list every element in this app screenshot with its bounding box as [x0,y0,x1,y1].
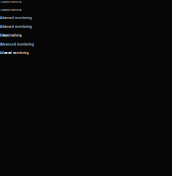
staticText: Advanced monitoring [0,0,21,3]
staticText: Advanced monitoring [0,33,21,37]
staticText: Advanced monitoring [0,16,32,20]
staticText: Advanced monitoring [0,8,21,11]
staticText: Advanced monitoring [0,25,32,28]
staticText: Advanced monitoring [0,51,29,55]
staticText: Advanced monitoring [0,42,34,46]
